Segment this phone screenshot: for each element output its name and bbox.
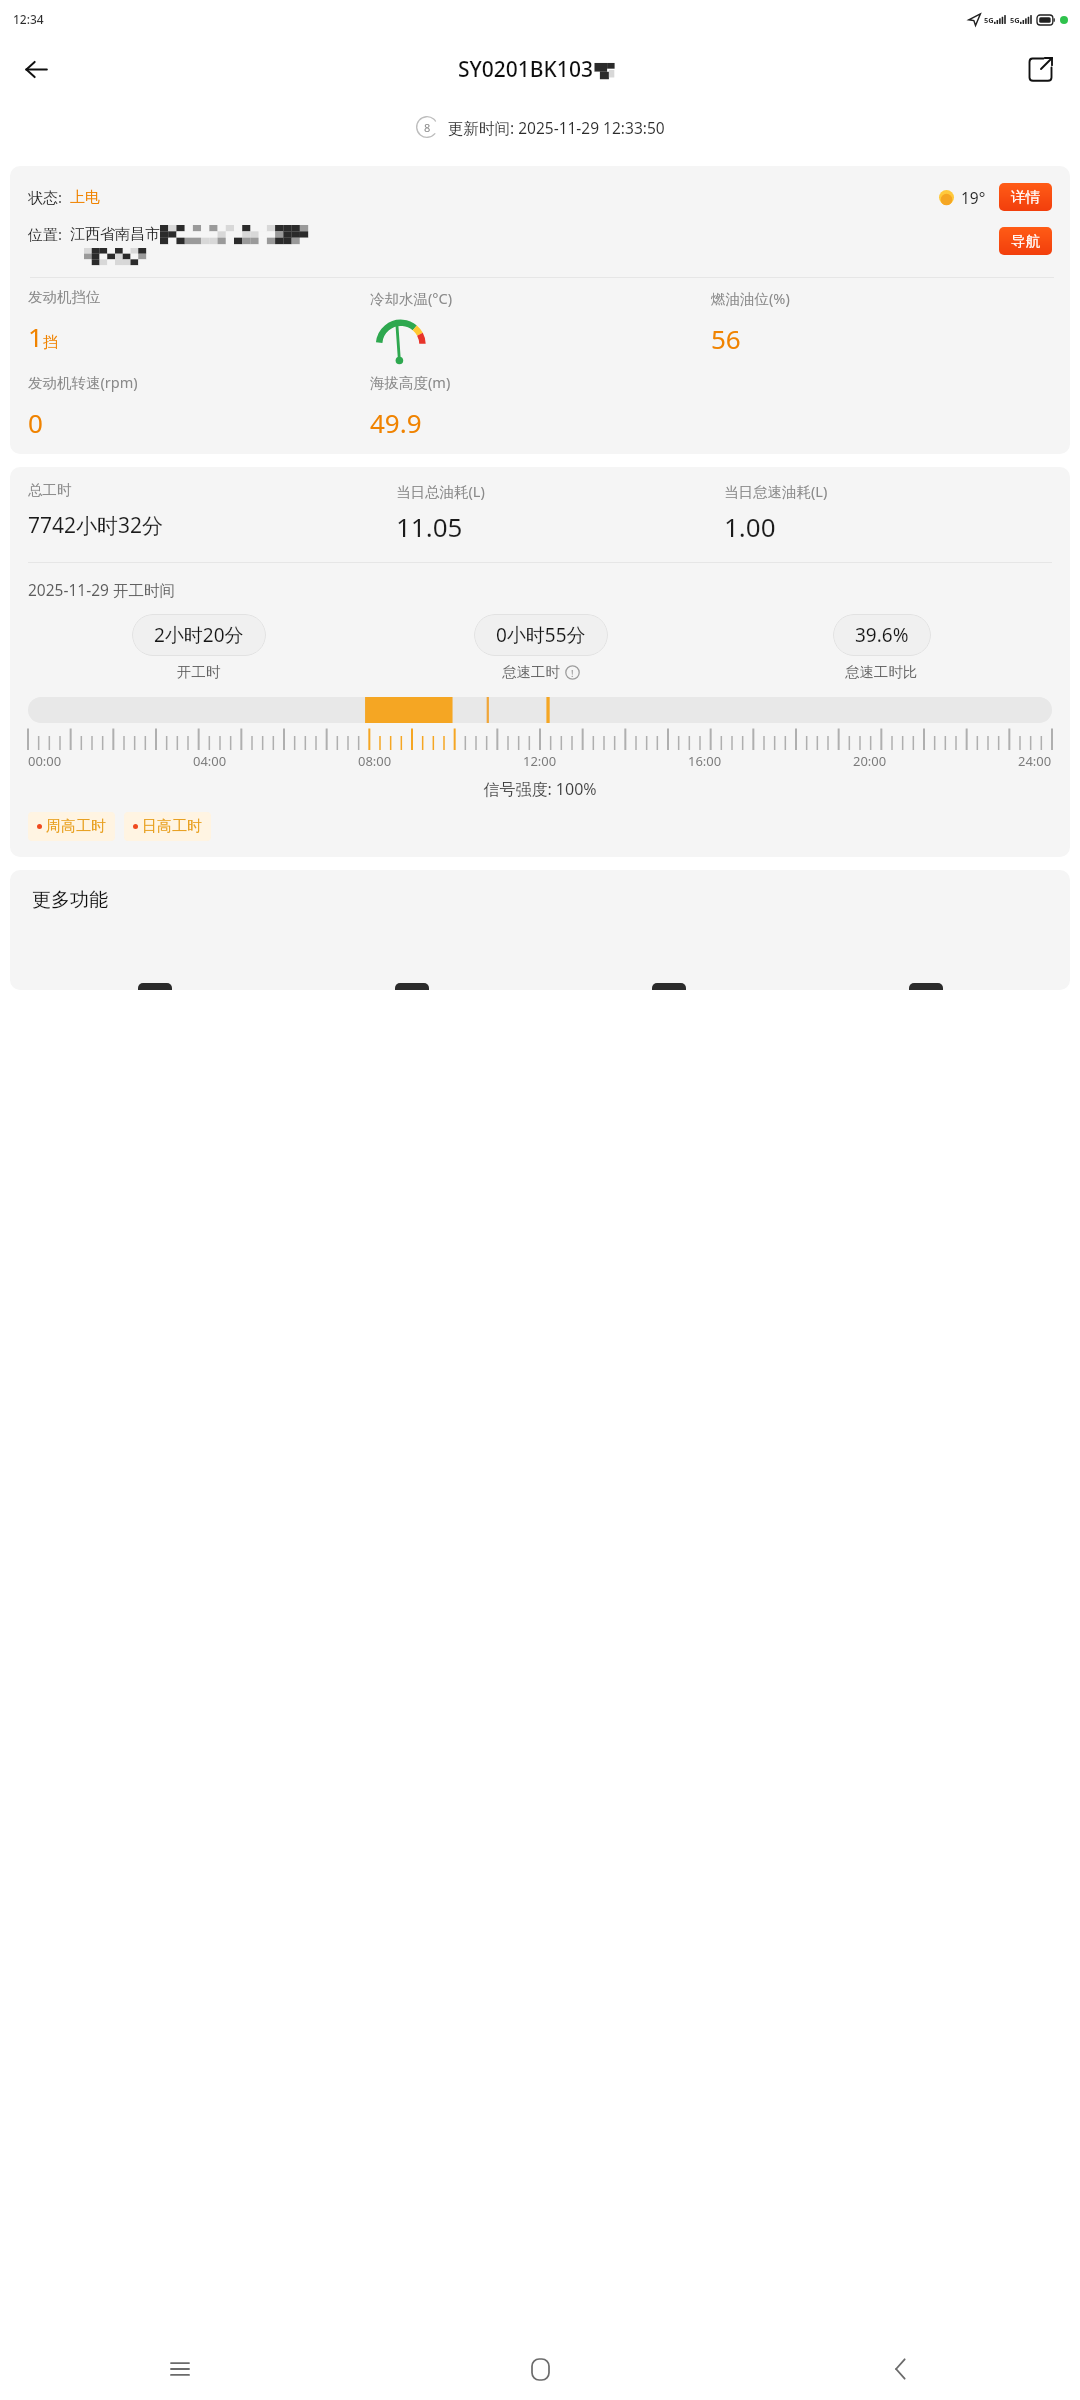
button[interactable]: 导航: [999, 227, 1052, 255]
staticText: 挡: [43, 333, 58, 352]
staticText: 怠速工时比: [845, 663, 918, 681]
staticText: 导航: [1011, 232, 1040, 250]
staticText: 19°: [961, 187, 986, 208]
staticText: 2小时20分: [154, 622, 244, 648]
staticText: 39.6%: [855, 622, 909, 648]
button[interactable]: 0小时55分: [474, 614, 608, 656]
button[interactable]: Function 0: [138, 983, 172, 990]
button[interactable]: Home: [360, 2338, 720, 2400]
staticText: 详情: [1011, 188, 1040, 206]
staticText: 上电: [70, 188, 100, 207]
staticText: 状态:: [28, 187, 63, 207]
button[interactable]: 日高工时: [124, 812, 211, 841]
staticText: 0: [28, 405, 43, 440]
staticText: 12:34: [13, 11, 44, 27]
staticText: 49.9: [370, 405, 422, 440]
staticText: 发动机挡位: [28, 288, 101, 306]
staticText: 周高工时: [46, 817, 106, 836]
staticText: 信号强度: 100%: [10, 778, 1070, 800]
staticText: 位置:: [28, 224, 63, 244]
button[interactable]: 周高工时: [28, 812, 115, 841]
staticText: 当日总油耗(L): [396, 481, 485, 501]
other: Info: [565, 665, 580, 680]
button[interactable]: Recent apps: [0, 2338, 360, 2400]
button[interactable]: 详情: [999, 183, 1052, 211]
staticText: 日高工时: [142, 817, 202, 836]
staticText: SY0201BK103: [458, 55, 593, 84]
staticText: 8: [424, 120, 431, 135]
staticText: 总工时: [28, 481, 72, 499]
button[interactable]: Function 3: [909, 983, 943, 990]
staticText: 11.05: [396, 509, 463, 544]
staticText: 怠速工时: [502, 663, 560, 681]
staticText: 00:00: [28, 752, 62, 770]
staticText: 江西省南昌市: [70, 225, 160, 244]
button[interactable]: Back: [720, 2338, 1080, 2400]
staticText: 56: [711, 321, 741, 356]
staticText: 发动机转速(rpm): [28, 372, 138, 392]
button[interactable]: Function 1: [395, 983, 429, 990]
staticText: 1.00: [724, 509, 776, 544]
staticText: 24:00: [1018, 752, 1052, 770]
staticText: 5G: [984, 15, 994, 25]
button[interactable]: 39.6%: [833, 614, 931, 656]
button[interactable]: Share: [1014, 43, 1066, 95]
staticText: 7742小时32分: [28, 511, 164, 540]
button[interactable]: Function 2: [652, 983, 686, 990]
staticText: !: [571, 667, 574, 679]
staticText: 冷却水温(°C): [370, 288, 453, 308]
staticText: 12:00: [523, 752, 557, 770]
staticText: 燃油油位(%): [711, 288, 790, 308]
staticText: 开工时: [177, 663, 221, 681]
staticText: 0小时55分: [496, 622, 586, 648]
staticText: 海拔高度(m): [370, 372, 451, 392]
staticText: 当日怠速油耗(L): [724, 481, 828, 501]
staticText: 2025-11-29 开工时间: [28, 579, 175, 600]
staticText: 5G: [1010, 15, 1020, 25]
staticText: 更新时间: 2025-11-29 12:33:50: [448, 117, 665, 138]
button[interactable]: 2小时20分: [132, 614, 266, 656]
staticText: 更多功能: [32, 888, 108, 912]
button[interactable]: Back: [10, 43, 62, 95]
staticText: 08:00: [358, 752, 392, 770]
staticText: 1: [28, 319, 43, 354]
staticText: 20:00: [853, 752, 887, 770]
staticText: 04:00: [193, 752, 227, 770]
staticText: 16:00: [688, 752, 722, 770]
